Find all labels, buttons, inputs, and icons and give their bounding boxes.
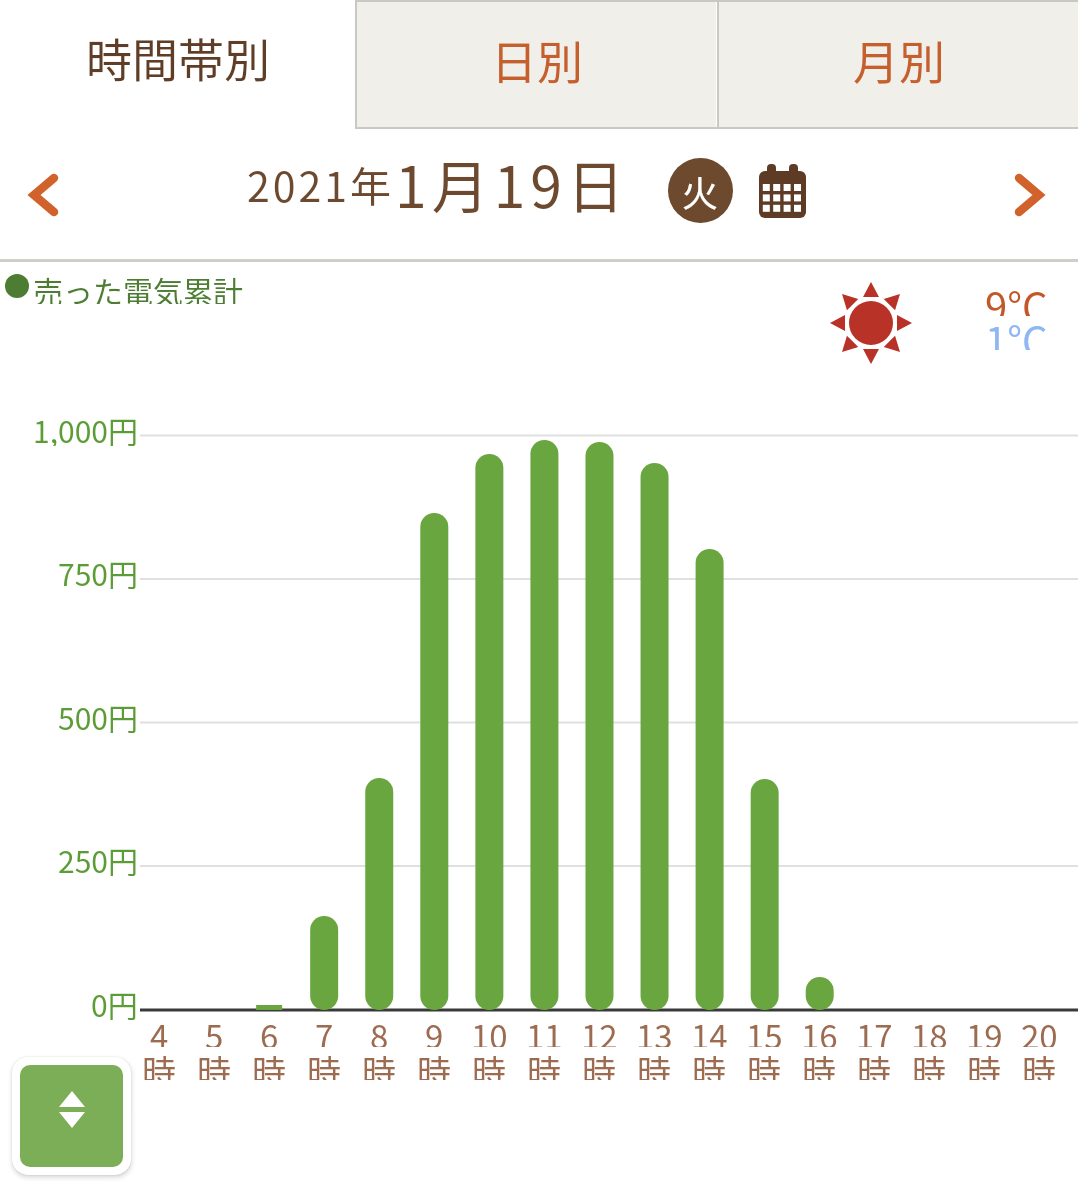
staticText: 19 — [966, 1011, 1003, 1047]
staticText: 16 — [801, 1011, 838, 1047]
staticText: 12 — [581, 1011, 618, 1047]
staticText: 2021年 — [247, 154, 395, 213]
staticText: 時 — [142, 1046, 176, 1080]
staticText: 時 — [527, 1046, 561, 1080]
button[interactable]: 火 — [668, 158, 733, 223]
staticText: 時 — [252, 1046, 286, 1080]
staticText: 500円 — [58, 695, 138, 733]
staticText: 750円 — [58, 551, 138, 589]
staticText: 時 — [1022, 1046, 1056, 1080]
staticText: 時間帯別 — [86, 24, 270, 91]
staticText: 時 — [802, 1046, 836, 1080]
staticText: 1月19日 — [395, 142, 629, 225]
staticText: 14 — [691, 1011, 728, 1047]
staticText: 11 — [526, 1011, 563, 1047]
staticText: 時 — [197, 1046, 231, 1080]
staticText: 6 — [260, 1011, 279, 1047]
staticText: 時 — [692, 1046, 726, 1080]
staticText: 4 — [150, 1011, 169, 1047]
staticText: 日別 — [491, 26, 583, 93]
staticText: 7 — [315, 1011, 334, 1047]
staticText: 5 — [205, 1011, 224, 1047]
staticText: 1°C — [985, 310, 1048, 350]
staticText: 時 — [362, 1046, 396, 1080]
button[interactable]: 月別 — [719, 2, 1078, 127]
button[interactable] — [20, 1065, 123, 1167]
staticText: 17 — [856, 1011, 893, 1047]
staticText: 時 — [967, 1046, 1001, 1080]
staticText: 時 — [582, 1046, 616, 1080]
staticText: 9 — [425, 1011, 444, 1047]
staticText: 時 — [637, 1046, 671, 1080]
button[interactable]: 日別 — [357, 2, 716, 127]
staticText: 15 — [746, 1011, 783, 1047]
staticText: 時 — [857, 1046, 891, 1080]
staticText: 1,000円 — [33, 408, 138, 446]
button[interactable]: 時間帯別 — [0, 0, 355, 129]
staticText: 火 — [682, 165, 719, 217]
staticText: 13 — [636, 1011, 673, 1047]
staticText: 時 — [912, 1046, 946, 1080]
staticText: 250円 — [58, 838, 138, 876]
button[interactable] — [759, 163, 807, 219]
staticText: 0円 — [91, 982, 138, 1020]
staticText: 8 — [370, 1011, 389, 1047]
staticText: 18 — [911, 1011, 948, 1047]
staticText: 21 — [1077, 1011, 1078, 1047]
staticText: 売った電気累計 — [33, 268, 243, 304]
button[interactable] — [14, 162, 66, 222]
staticText: 時 — [417, 1046, 451, 1080]
staticText: 9°C — [985, 276, 1048, 316]
staticText: 月別 — [853, 26, 945, 93]
staticText: 20 — [1021, 1011, 1058, 1047]
staticText: 時 — [472, 1046, 506, 1080]
button[interactable] — [1006, 162, 1058, 222]
staticText: 10 — [471, 1011, 508, 1047]
staticText: 時 — [307, 1046, 341, 1080]
staticText: 時 — [747, 1046, 781, 1080]
